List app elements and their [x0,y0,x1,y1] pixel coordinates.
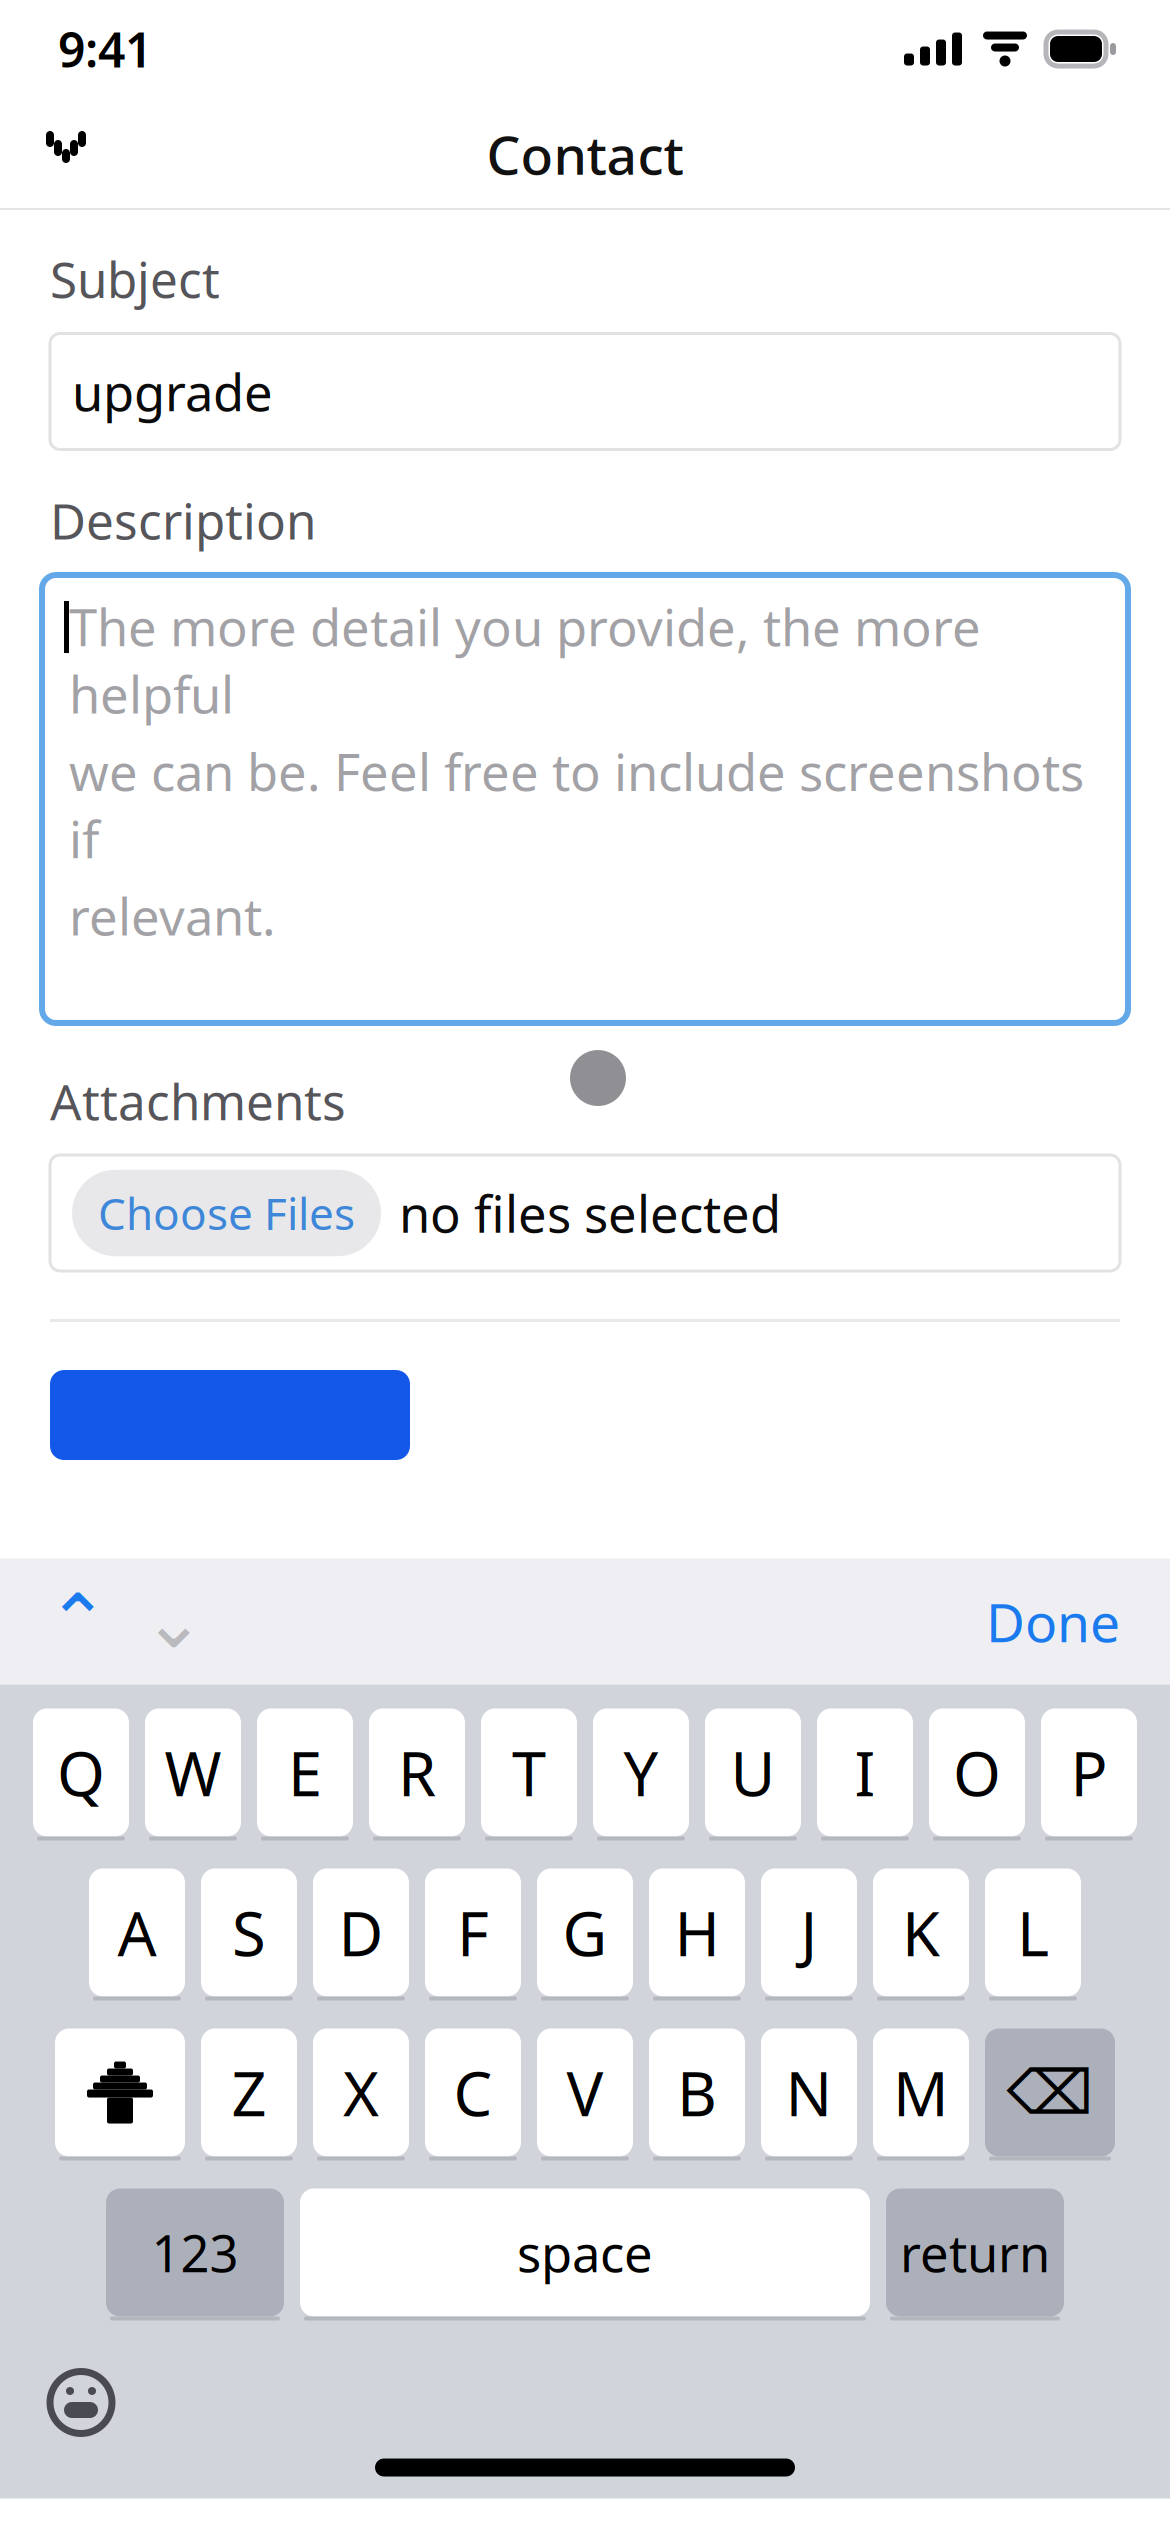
staticText: ⌫ [1006,2058,1093,2127]
staticText: T [512,1732,546,1813]
button[interactable]: R [369,1708,465,1840]
staticText: Z [231,2052,266,2133]
staticText: Done [986,1586,1120,1657]
button[interactable]: D [313,1868,409,2000]
staticText: C [453,2052,492,2133]
staticText: M [893,2052,949,2133]
button[interactable]: W [145,1708,241,1840]
staticText: we can be. Feel free to include screensh… [69,738,1084,872]
staticText: S [232,1892,266,1973]
button[interactable]: Q [33,1708,129,1840]
staticText: upgrade [72,358,273,425]
button[interactable]: V [537,2028,633,2160]
staticText: The more detail you provide, the more he… [69,593,981,728]
button[interactable] [50,1370,410,1460]
button[interactable]: Y [593,1708,689,1840]
button[interactable]: N [761,2028,857,2160]
button[interactable]: A [89,1868,185,2000]
button[interactable]: X [313,2028,409,2160]
button[interactable]: F [425,1868,521,2000]
button[interactable]: Emoji [26,2354,136,2450]
button[interactable]: Previous field [30,1573,126,1669]
staticText: 9:41 [58,17,152,81]
button[interactable]: return [886,2188,1064,2320]
staticText: I [854,1732,875,1813]
staticText: N [785,2052,832,2133]
staticText: Y [623,1732,658,1813]
button[interactable]: I [817,1708,913,1840]
button[interactable]: space [300,2188,870,2320]
staticText: Description [50,487,316,553]
button[interactable]: Done [966,1573,1140,1669]
button[interactable]: T [481,1708,577,1840]
button[interactable]: Next field [126,1573,222,1669]
staticText: ⌄ [142,1579,205,1664]
button[interactable]: upgrade [50,333,1120,449]
staticText: J [800,1892,817,1973]
staticText: E [288,1732,322,1813]
staticText: O [953,1732,1001,1813]
staticText: D [338,1892,383,1973]
staticText: U [730,1732,775,1813]
button[interactable]: Back [16,104,116,204]
button[interactable]: U [705,1708,801,1840]
button[interactable]: H [649,1868,745,2000]
staticText: V [566,2052,603,2133]
button[interactable]: B [649,2028,745,2160]
button[interactable]: 123 [106,2188,284,2320]
button[interactable]: Shift [55,2028,185,2160]
button[interactable]: Delete [985,2028,1115,2160]
button[interactable]: K [873,1868,969,2000]
staticText: Attachments [50,1068,346,1134]
button[interactable]: P [1041,1708,1137,1840]
button[interactable]: Z [201,2028,297,2160]
staticText: Subject [50,246,220,311]
staticText: Choose Files [98,1184,355,1242]
staticText: X [343,2052,379,2133]
staticText: A [117,1892,156,1973]
staticText: G [562,1892,607,1973]
staticText: ⌃ [46,1579,109,1664]
staticText: R [398,1732,436,1813]
staticText: Q [57,1732,105,1813]
button[interactable]: L [985,1868,1081,2000]
staticText: space [517,2219,653,2286]
staticText: 123 [151,2219,238,2286]
staticText: return [900,2219,1050,2286]
staticText: W [164,1732,221,1813]
button[interactable]: J [761,1868,857,2000]
button[interactable]: O [929,1708,1025,1840]
button[interactable]: C [425,2028,521,2160]
button[interactable]: The more detail you provide, the more he… [42,575,1128,1023]
button[interactable]: E [257,1708,353,1840]
staticText: F [457,1892,489,1973]
button[interactable]: Choose Files [72,1170,381,1256]
staticText: H [674,1892,719,1973]
button[interactable]: G [537,1868,633,2000]
staticText: B [677,2052,717,2133]
button[interactable]: S [201,1868,297,2000]
button[interactable]: M [873,2028,969,2160]
staticText: no files selected [399,1179,781,1247]
staticText: P [1070,1732,1107,1813]
staticText: relevant. [69,882,276,949]
staticText: K [902,1892,940,1973]
staticText: L [1017,1892,1049,1973]
staticText: Contact [486,119,683,189]
